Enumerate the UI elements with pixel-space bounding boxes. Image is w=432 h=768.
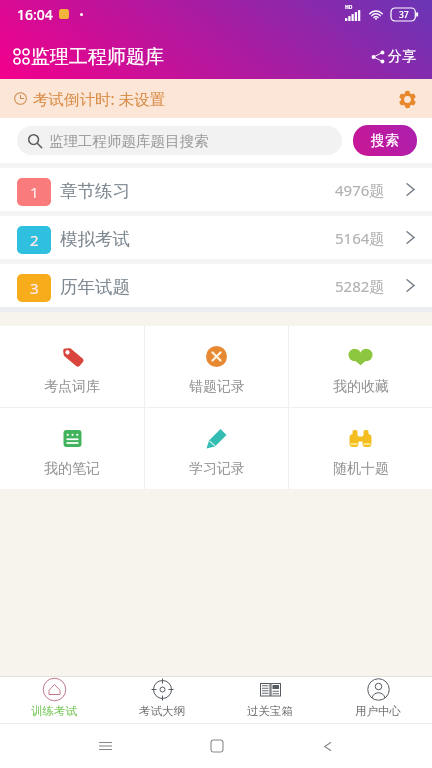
staticText: 错题记录 — [189, 378, 245, 396]
staticText: 监理工程师题库题目搜索 — [49, 132, 209, 150]
button[interactable]: 我的收藏 — [289, 326, 432, 396]
button[interactable]: 随机十题 — [289, 408, 432, 478]
staticText: 历年试题 — [60, 276, 130, 298]
staticText: 分享 — [388, 48, 416, 66]
staticText: 过关宝箱 — [247, 704, 293, 718]
button[interactable]: 过关宝箱 — [216, 677, 324, 718]
button[interactable]: 2 — [0, 216, 432, 259]
staticText: 考试倒计时: 未设置 — [33, 88, 166, 109]
staticText: HD — [345, 4, 353, 11]
button[interactable]: 监理工程师题库题目搜索 — [17, 126, 342, 155]
button[interactable]: 设置 — [394, 86, 420, 112]
staticText: 我的收藏 — [333, 378, 389, 396]
button[interactable]: 我的笔记 — [0, 408, 144, 478]
staticText: 我的笔记 — [44, 460, 100, 478]
button[interactable]: 1 — [0, 168, 432, 211]
button[interactable]: 错题记录 — [145, 326, 288, 396]
button[interactable]: 搜索 — [353, 125, 417, 156]
staticText: 考点词库 — [44, 378, 100, 396]
staticText: 16:04 — [17, 5, 53, 24]
staticText: 5164题 — [335, 228, 385, 248]
button[interactable]: 3 — [0, 264, 432, 307]
staticText: 4976题 — [335, 180, 385, 200]
button[interactable]: 考试大纲 — [108, 677, 216, 718]
staticText: 3 — [30, 278, 39, 298]
staticText: 搜索 — [371, 132, 399, 150]
staticText: 考试大纲 — [139, 704, 185, 718]
staticText: 监理工程师题库 — [31, 45, 164, 69]
staticText: 5282题 — [335, 276, 385, 296]
button[interactable]: 用户中心 — [324, 677, 432, 718]
button[interactable]: 考点词库 — [0, 326, 144, 396]
button[interactable]: 学习记录 — [145, 408, 288, 478]
staticText: 2 — [30, 230, 39, 250]
staticText: 章节练习 — [60, 180, 130, 202]
staticText: 学习记录 — [189, 460, 245, 478]
button[interactable]: 分享 — [369, 42, 418, 72]
staticText: 模拟考试 — [60, 228, 130, 250]
staticText: 随机十题 — [333, 460, 389, 478]
button[interactable]: 训练考试 — [0, 677, 108, 718]
staticText: 用户中心 — [355, 704, 401, 718]
staticText: 训练考试 — [31, 704, 77, 718]
staticText: 37 — [399, 9, 409, 21]
staticText: 1 — [30, 182, 39, 202]
